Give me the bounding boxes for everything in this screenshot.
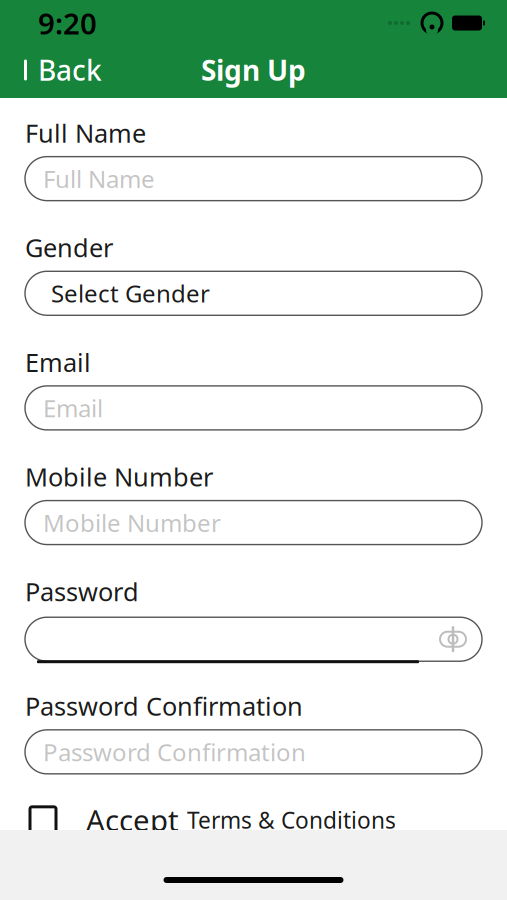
staticText: Email (25, 345, 91, 379)
staticText: Mobile Number (43, 507, 221, 538)
staticText: Back (38, 51, 102, 89)
staticText: Email (43, 392, 103, 424)
staticText: Full Name (25, 116, 146, 150)
staticText: Accept (86, 800, 179, 839)
button[interactable]: Hide password (438, 617, 482, 661)
button[interactable]: Select Gender (25, 271, 482, 315)
staticText: Register (192, 864, 314, 900)
button[interactable]: Accept (25, 798, 482, 842)
staticText: Mobile Number (25, 460, 213, 493)
staticText: Password Confirmation (43, 736, 306, 768)
button[interactable]: Back (0, 46, 114, 94)
button[interactable]: Register (28, 858, 479, 900)
staticText: Gender (25, 231, 113, 264)
staticText: Password Confirmation (25, 689, 303, 723)
staticText: Full Name (43, 163, 155, 195)
staticText: Password (25, 575, 139, 608)
staticText: Sign Up (201, 51, 306, 89)
staticText: Select Gender (51, 277, 210, 309)
staticText: Terms & Conditions (187, 805, 396, 835)
staticText: 9:20 (38, 3, 97, 42)
